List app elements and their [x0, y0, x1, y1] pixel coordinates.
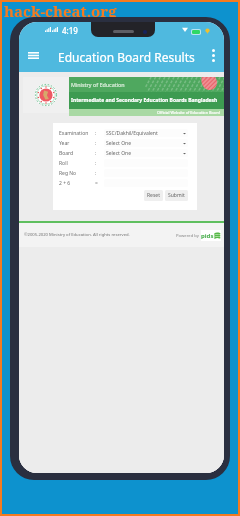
staticText: Select One — [106, 150, 131, 157]
staticText: : — [95, 150, 104, 157]
staticText: Ministry of Education — [71, 81, 125, 88]
staticText: Education Board Results — [58, 49, 195, 65]
staticText: = — [95, 180, 104, 187]
staticText: ©2005-2020 Ministry of Education. All ri… — [24, 232, 130, 238]
button[interactable]: Open navigation menu — [23, 45, 44, 66]
staticText: 4:19 — [62, 25, 78, 36]
staticText: Select One — [106, 140, 131, 147]
staticText: Reg No — [59, 170, 95, 177]
staticText: Submit — [168, 192, 185, 199]
button[interactable]: SSC/Dakhil/Equivalent — [104, 129, 188, 137]
staticText: Year — [59, 140, 95, 147]
staticText: Official Website of Education Board — [157, 110, 220, 115]
staticText: Board — [59, 150, 95, 157]
staticText: SSC/Dakhil/Equivalent — [106, 130, 158, 137]
staticText: Examination — [59, 130, 95, 137]
button[interactable]: More options — [204, 46, 222, 64]
button[interactable]: Reset — [144, 190, 163, 201]
staticText: pids — [201, 232, 214, 240]
staticText: Roll — [59, 160, 95, 167]
staticText: : — [95, 160, 104, 167]
button[interactable]: Select One — [104, 139, 188, 147]
staticText: : — [95, 140, 104, 147]
staticText: : — [95, 170, 104, 177]
staticText: Reset — [147, 192, 160, 199]
staticText: Intermediate and Secondary Education Boa… — [71, 97, 224, 104]
button[interactable]: Select One — [104, 149, 188, 157]
staticText: Powered by — [176, 233, 199, 239]
staticText: : — [95, 130, 104, 137]
staticText: 2 + 6 — [59, 180, 95, 187]
button[interactable]: Submit — [165, 190, 188, 201]
staticText: hack-cheat.org — [4, 1, 117, 21]
